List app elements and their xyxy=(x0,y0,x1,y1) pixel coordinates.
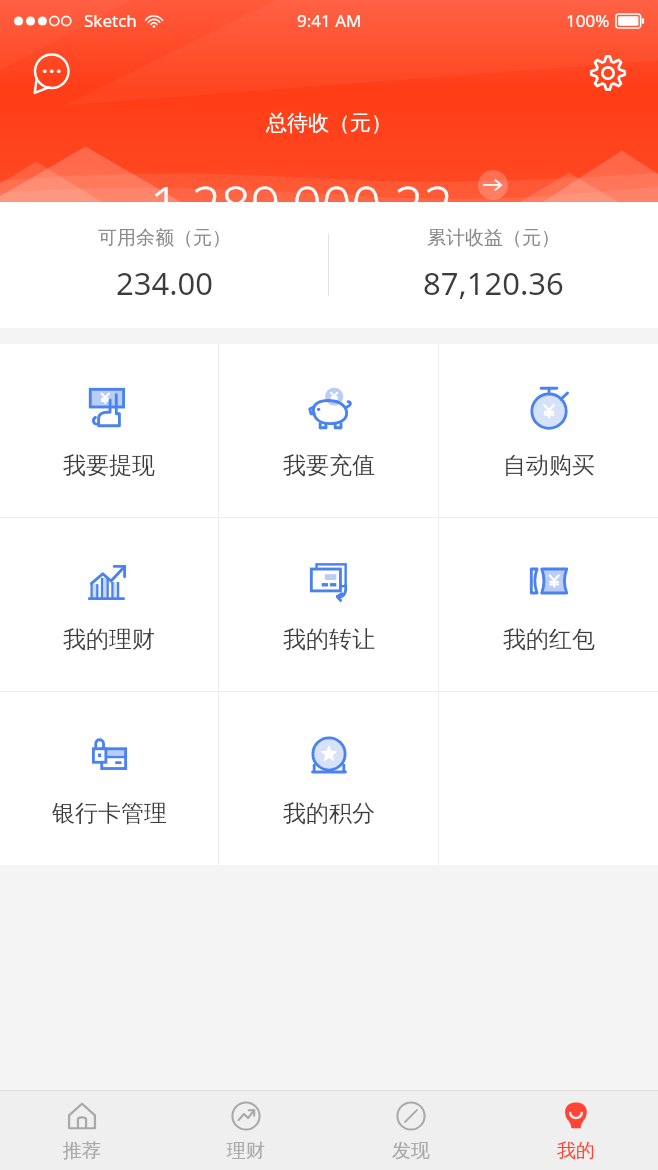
button[interactable]: 我要充值 xyxy=(219,344,438,517)
button[interactable]: 我的积分 xyxy=(219,692,438,865)
staticText: 我的 xyxy=(557,1139,595,1163)
button[interactable]: 理财 xyxy=(164,1091,328,1170)
staticText: 银行卡管理 xyxy=(52,799,167,828)
button[interactable]: 可用余额（元） xyxy=(0,202,328,328)
staticText: 我的转让 xyxy=(283,625,375,654)
staticText: 我的积分 xyxy=(283,799,375,828)
button[interactable]: 我的 xyxy=(493,1091,658,1170)
staticText: 总待收（元） xyxy=(266,110,392,136)
button[interactable]: Settings xyxy=(580,45,636,101)
button[interactable]: 发现 xyxy=(328,1091,493,1170)
button[interactable]: 我的理财 xyxy=(0,518,218,691)
staticText: 100% xyxy=(566,9,610,32)
button[interactable]: 自动购买 xyxy=(439,344,658,517)
button[interactable]: Messages xyxy=(22,45,78,101)
button[interactable]: 1,289,000.22 xyxy=(150,168,508,202)
staticText: 1,289,000.22 xyxy=(150,168,454,202)
staticText: 87,120.36 xyxy=(423,262,564,304)
staticText: Sketch xyxy=(84,9,137,32)
staticText: 我要提现 xyxy=(63,451,155,480)
staticText: 我要充值 xyxy=(283,451,375,480)
staticText: 234.00 xyxy=(116,262,213,304)
button[interactable]: 银行卡管理 xyxy=(0,692,218,865)
staticText: 自动购买 xyxy=(503,451,595,480)
button[interactable]: 推荐 xyxy=(0,1091,164,1170)
staticText: 9:41 AM xyxy=(297,9,362,32)
staticText: 发现 xyxy=(392,1139,430,1163)
staticText: 理财 xyxy=(227,1139,265,1163)
button[interactable]: 累计收益（元） xyxy=(329,202,658,328)
staticText: 可用余额（元） xyxy=(98,226,231,250)
button[interactable]: 我的红包 xyxy=(439,518,658,691)
staticText: 我的红包 xyxy=(503,625,595,654)
button[interactable]: 我要提现 xyxy=(0,344,218,517)
staticText: 我的理财 xyxy=(63,625,155,654)
button[interactable]: 我的转让 xyxy=(219,518,438,691)
staticText: 推荐 xyxy=(63,1139,101,1163)
staticText: 累计收益（元） xyxy=(427,226,560,250)
